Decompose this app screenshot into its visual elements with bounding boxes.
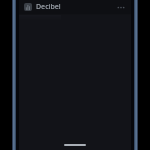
button[interactable]: Home indicator — [64, 144, 86, 146]
button[interactable]: More options — [116, 2, 126, 12]
button[interactable]: Decibel app icon — [24, 3, 32, 11]
staticText: Decibel — [36, 2, 61, 12]
